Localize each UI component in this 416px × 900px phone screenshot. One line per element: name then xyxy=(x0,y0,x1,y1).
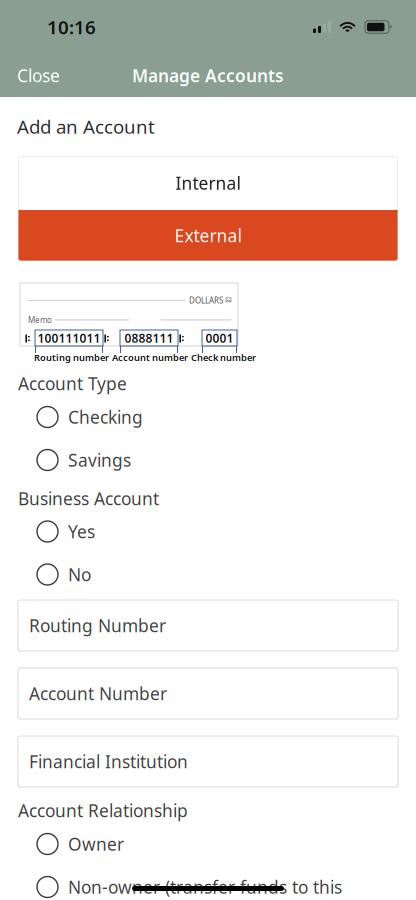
staticText: Business Account xyxy=(18,487,159,510)
staticText: Account Relationship xyxy=(18,799,188,822)
staticText: External xyxy=(174,224,241,247)
staticText: Owner xyxy=(68,832,124,855)
staticText: Routing number xyxy=(34,351,109,364)
staticText: Account Number xyxy=(29,682,167,705)
staticText: Manage Accounts xyxy=(132,64,284,87)
button[interactable]: No xyxy=(0,553,416,596)
staticText: 0001 xyxy=(205,330,233,346)
staticText: Memo xyxy=(28,315,52,325)
staticText: Check number xyxy=(191,351,256,364)
button[interactable]: Owner xyxy=(0,823,416,865)
button[interactable]: Internal xyxy=(18,156,398,210)
staticText: Checking xyxy=(68,405,143,428)
staticText: 10:16 xyxy=(47,15,96,39)
staticText: Account number xyxy=(112,351,188,364)
staticText: Yes xyxy=(68,520,95,543)
staticText: Savings xyxy=(68,448,131,471)
staticText: No xyxy=(68,563,91,586)
staticText: Non-owner (transfer funds to this xyxy=(68,875,342,898)
button[interactable]: Non-owner (transfer funds to this xyxy=(0,865,416,900)
staticText: Account Type xyxy=(18,372,127,395)
staticText: Close xyxy=(17,64,60,87)
button[interactable]: Account Number xyxy=(18,668,398,719)
staticText: 0888111 xyxy=(124,330,173,346)
staticText: DOLLARS xyxy=(189,295,223,306)
staticText: 100111011 xyxy=(37,330,100,346)
button[interactable]: Financial Institution xyxy=(18,736,398,787)
staticText: Add an Account xyxy=(17,114,155,139)
staticText: Financial Institution xyxy=(29,750,188,773)
staticText: Routing Number xyxy=(29,614,166,637)
button[interactable]: Savings xyxy=(0,438,416,482)
button[interactable]: External xyxy=(18,210,398,261)
button[interactable]: Routing Number xyxy=(18,600,398,651)
staticText: Internal xyxy=(175,171,240,194)
button[interactable]: Close xyxy=(0,54,77,97)
button[interactable]: Checking xyxy=(0,396,416,438)
button[interactable]: Yes xyxy=(0,510,416,553)
